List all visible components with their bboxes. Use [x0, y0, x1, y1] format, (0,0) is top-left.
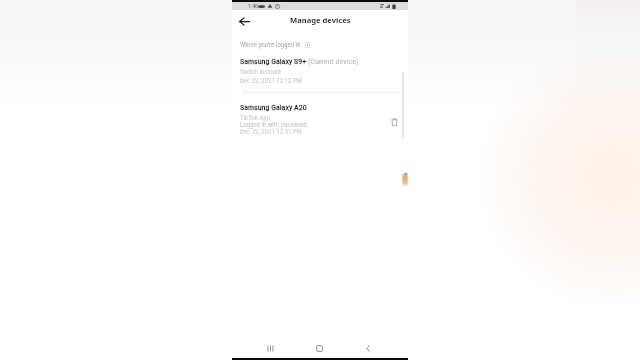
- button[interactable]: Samsung Galaxy S9+, current device: [232, 52, 408, 90]
- staticText: (Current device): [308, 57, 359, 66]
- button[interactable]: Recents: [264, 342, 276, 354]
- staticText: Samsung Galaxy S9+: [240, 57, 307, 66]
- staticText: TikTok App: [240, 114, 271, 122]
- button[interactable]: Where you're logged in: [240, 41, 310, 49]
- staticText: Dec 22, 2021 12:31 PM: [240, 128, 302, 136]
- staticText: Where you're logged in: [240, 41, 301, 49]
- staticText: 1:40: [248, 3, 258, 10]
- button[interactable]: Remove device: [387, 115, 401, 129]
- button[interactable]: Samsung Galaxy A20, TikTok App: [232, 99, 408, 139]
- button[interactable]: Home: [313, 342, 325, 354]
- staticText: Switch account: [240, 68, 282, 76]
- staticText: Logged in with password: [240, 121, 307, 129]
- button[interactable]: Back: [235, 12, 254, 31]
- button[interactable]: Back: [362, 342, 374, 354]
- staticText: Dec 22, 2021 12:12 PM: [240, 77, 302, 85]
- staticText: Samsung Galaxy A20: [240, 103, 307, 112]
- staticText: Manage devices: [290, 15, 351, 25]
